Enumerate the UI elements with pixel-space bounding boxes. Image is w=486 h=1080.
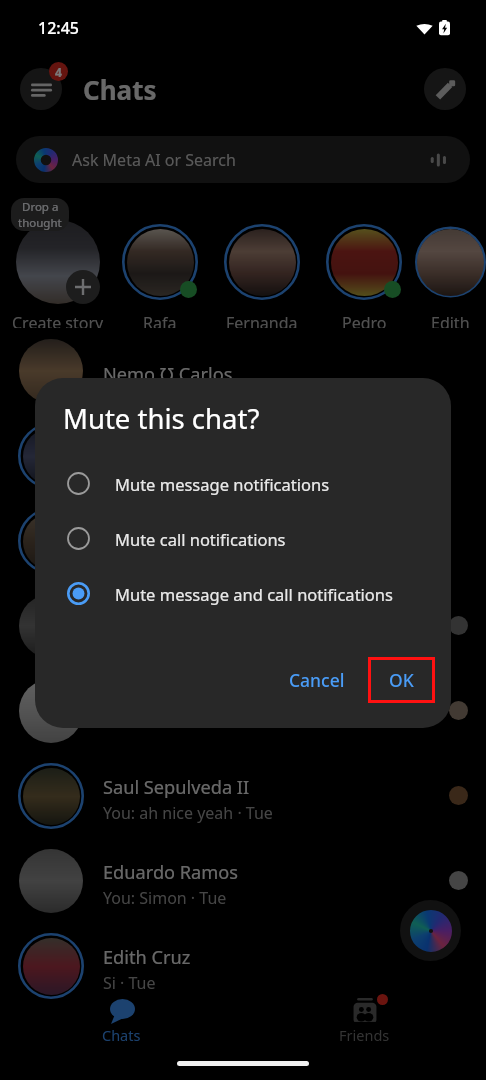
staticText: Eduardo Ramos bbox=[103, 860, 239, 885]
staticText: OK bbox=[389, 668, 414, 692]
staticText: Nemo Ʊ Carlos bbox=[103, 362, 233, 387]
staticText: Ask Meta AI or Search bbox=[72, 149, 236, 171]
staticText: Chats bbox=[102, 1025, 141, 1045]
button[interactable]: Meta AI bbox=[400, 900, 461, 961]
staticText: Edith bbox=[431, 312, 470, 328]
staticText: Mute message and call notifications bbox=[115, 583, 393, 605]
button[interactable]: Drop a bbox=[11, 198, 69, 231]
staticText: Chats bbox=[83, 72, 157, 107]
button[interactable]: Edith Cruz bbox=[18, 923, 468, 1008]
staticText: 4 bbox=[55, 64, 62, 80]
staticText: Cancel bbox=[289, 668, 345, 692]
button[interactable] bbox=[18, 583, 468, 668]
staticText: Create story bbox=[12, 312, 104, 328]
staticText: 12:45 bbox=[38, 17, 79, 39]
button[interactable]: Mute message notifications bbox=[35, 456, 451, 511]
staticText: Mute this chat? bbox=[63, 400, 260, 437]
staticText: Pedro bbox=[342, 312, 387, 328]
staticText: Si · Tue bbox=[103, 972, 156, 994]
staticText: thought bbox=[18, 215, 62, 231]
button[interactable]: Mute message and call notifications bbox=[35, 566, 451, 621]
staticText: Mute message notifications bbox=[115, 473, 330, 495]
button[interactable]: Create story bbox=[7, 194, 109, 328]
staticText: Edith Cruz bbox=[103, 945, 191, 970]
button[interactable]: Ask Meta AI or Search bbox=[16, 136, 470, 183]
button[interactable] bbox=[18, 413, 468, 498]
button[interactable]: Rafa bbox=[109, 194, 211, 328]
button[interactable]: You: ya te la you know · Tue bbox=[18, 668, 468, 753]
button[interactable]: OK bbox=[368, 657, 435, 703]
button[interactable]: Fernanda bbox=[211, 194, 313, 328]
staticText: You: Simon · Tue bbox=[103, 887, 227, 909]
button[interactable]: Pedro bbox=[313, 194, 415, 328]
staticText: You: ah nice yeah · Tue bbox=[103, 802, 273, 824]
staticText: Saul Sepulveda II bbox=[103, 775, 250, 800]
button[interactable]: Eduardo Ramos bbox=[18, 838, 468, 923]
button[interactable]: Cancel bbox=[274, 657, 360, 703]
button[interactable]: New chat bbox=[424, 68, 466, 110]
button[interactable]: Mute call notifications bbox=[35, 511, 451, 566]
button[interactable]: Friends bbox=[243, 984, 486, 1045]
button[interactable]: Menu bbox=[20, 68, 62, 110]
button[interactable]: Saul Sepulveda II bbox=[18, 753, 468, 838]
button[interactable]: Chats bbox=[0, 984, 243, 1045]
staticText: Rafa bbox=[143, 312, 177, 328]
staticText: Drop a bbox=[22, 199, 59, 215]
button[interactable]: Nemo Ʊ Carlos bbox=[18, 328, 468, 413]
button[interactable] bbox=[18, 498, 468, 583]
staticText: Mute call notifications bbox=[115, 528, 286, 550]
staticText: Friends bbox=[339, 1025, 390, 1045]
staticText: Fernanda bbox=[226, 312, 298, 328]
button[interactable]: Edith bbox=[415, 194, 486, 328]
